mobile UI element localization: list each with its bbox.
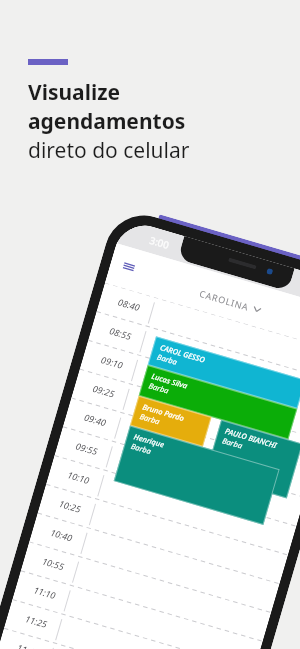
- staticText: 09:40: [83, 411, 108, 429]
- staticText: 10:10: [66, 468, 91, 486]
- staticText: 08:55: [108, 324, 134, 342]
- staticText: 10:25: [58, 497, 83, 515]
- staticText: CAROLINA: [198, 287, 251, 313]
- staticText: Barba: [139, 411, 162, 427]
- staticText: Lucas Silva: [150, 371, 189, 391]
- staticText: 11:25: [24, 612, 49, 630]
- button[interactable]: CAROLINA: [198, 287, 262, 316]
- staticText: 3:00: [148, 233, 171, 252]
- staticText: 09:55: [74, 439, 100, 457]
- staticText: CAROL GESSO: [159, 342, 207, 365]
- staticText: 09:10: [100, 353, 125, 371]
- button[interactable]: CAROL GESSO: [148, 336, 300, 409]
- staticText: 11:10: [32, 583, 58, 601]
- staticText: Barba: [130, 441, 153, 456]
- button[interactable]: Lucas Silva: [139, 365, 297, 439]
- button[interactable]: Henrique: [114, 425, 280, 525]
- staticText: 08:40: [117, 295, 142, 313]
- staticText: PAULO BIANCHI: [224, 426, 279, 450]
- button[interactable]: Bruno Pardo: [130, 396, 211, 447]
- staticText: 10:40: [49, 526, 75, 544]
- staticText: Bruno Pardo: [141, 401, 185, 423]
- staticText: Barba: [156, 352, 179, 367]
- staticText: Barba: [221, 435, 244, 451]
- staticText: 11:40: [16, 641, 41, 649]
- staticText: Henrique: [133, 431, 166, 450]
- button[interactable]: Menu: [123, 262, 135, 271]
- staticText: 10:55: [41, 555, 66, 573]
- staticText: agendamentos: [28, 107, 186, 136]
- staticText: Visualize: [28, 78, 121, 107]
- staticText: Barba: [148, 380, 171, 396]
- button[interactable]: PAULO BIANCHI: [205, 420, 300, 498]
- staticText: direto do celular: [28, 136, 190, 165]
- staticText: 09:25: [91, 382, 117, 400]
